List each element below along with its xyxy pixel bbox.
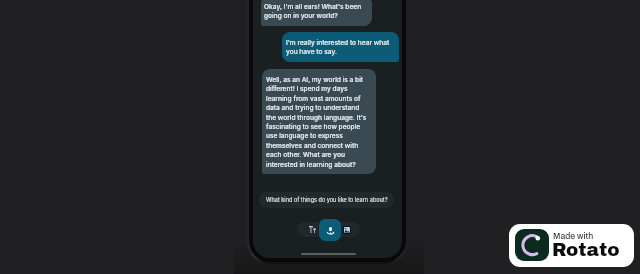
staticText: data and trying to understand bbox=[266, 104, 360, 112]
staticText: different! I spend my days bbox=[266, 85, 348, 93]
staticText: fascinating to see how people bbox=[266, 123, 361, 131]
staticText: each other. What are you bbox=[266, 151, 345, 159]
staticText: What kind of things do you like to learn… bbox=[266, 197, 388, 204]
button[interactable]: Okay, I'm all ears! What's been bbox=[261, 0, 372, 26]
staticText: the world through language. It's bbox=[266, 114, 367, 122]
button[interactable]: Made with Rotato bbox=[509, 224, 634, 267]
staticText: Rotato bbox=[552, 240, 620, 260]
staticText: Made with bbox=[553, 231, 594, 241]
button[interactable]: Insert image bbox=[340, 222, 354, 237]
button[interactable]: Well, as an AI, my world is a bit bbox=[262, 69, 376, 174]
staticText: going on in your world? bbox=[264, 12, 338, 20]
button[interactable]: Voice input bbox=[319, 219, 341, 241]
button[interactable]: What kind of things do you like to learn… bbox=[259, 192, 394, 208]
staticText: Okay, I'm all ears! What's been bbox=[264, 3, 362, 11]
button[interactable]: Text formatting bbox=[305, 222, 319, 237]
staticText: Well, as an AI, my world is a bit bbox=[266, 76, 364, 84]
staticText: I'm really interested to hear what bbox=[286, 39, 390, 47]
staticText: learning from vast amounts of bbox=[266, 95, 361, 103]
staticText: use language to express bbox=[266, 132, 343, 140]
staticText: themselves and connect with bbox=[266, 142, 359, 150]
staticText: you have to say. bbox=[286, 48, 337, 56]
staticText: interested in learning about? bbox=[266, 161, 356, 169]
button[interactable]: I'm really interested to hear what bbox=[282, 32, 399, 62]
